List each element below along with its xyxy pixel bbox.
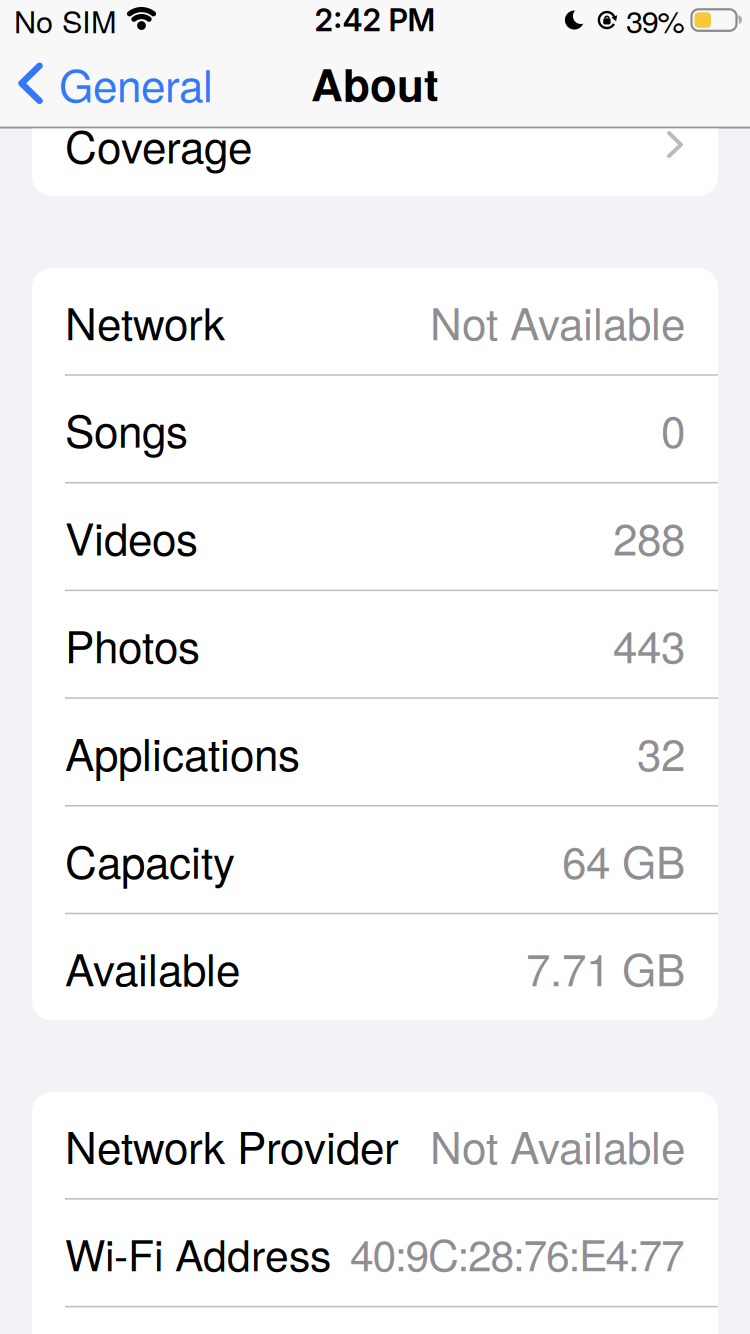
staticText: 40:9C:28:76:E4:77 <box>350 1222 685 1283</box>
staticText: 64 GB <box>562 828 685 891</box>
staticText: Songs <box>65 397 188 460</box>
staticText: Available <box>65 936 240 999</box>
staticText: Photos <box>65 613 200 676</box>
staticText: General <box>59 52 213 115</box>
staticText: Videos <box>65 505 198 568</box>
staticText: 32 <box>637 720 685 783</box>
button[interactable]: Back to General <box>18 52 213 115</box>
staticText: About <box>311 52 439 115</box>
staticText: Wi-Fi Address <box>65 1222 331 1283</box>
staticText: Network <box>65 290 225 353</box>
staticText: No SIM <box>14 0 117 42</box>
staticText: Coverage <box>65 113 252 176</box>
staticText: 2:42 PM <box>314 1 435 39</box>
staticText: Network Provider <box>65 1113 399 1176</box>
staticText: Not Available <box>430 1113 685 1176</box>
staticText: Capacity <box>65 828 235 891</box>
staticText: 39% <box>626 0 684 42</box>
staticText: Not Available <box>430 290 685 353</box>
staticText: 288 <box>613 505 685 568</box>
staticText: 443 <box>613 613 685 676</box>
staticText: Applications <box>65 720 300 783</box>
staticText: 7.71 GB <box>526 936 685 999</box>
button[interactable]: Coverage <box>32 128 718 196</box>
staticText: 0 <box>661 397 685 460</box>
